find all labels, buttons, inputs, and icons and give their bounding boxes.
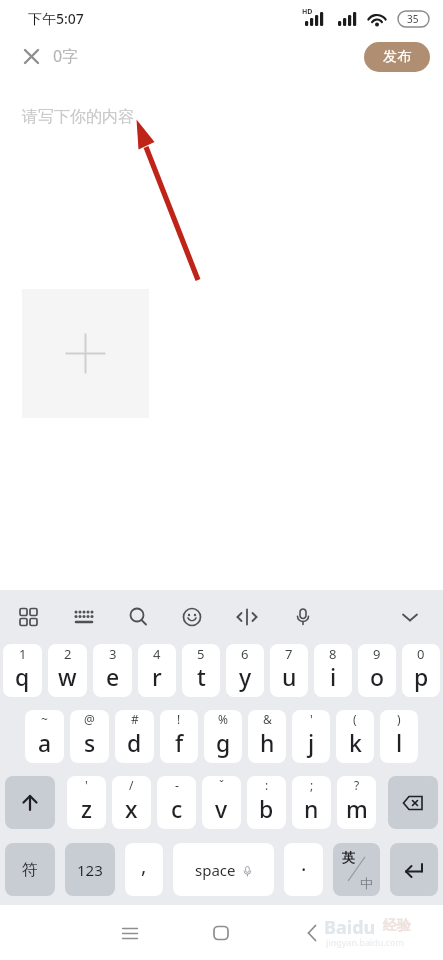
button[interactable]: @: [70, 710, 109, 763]
staticText: 8: [329, 645, 337, 663]
button[interactable]: [398, 605, 422, 629]
button[interactable]: [126, 605, 150, 629]
staticText: q: [15, 661, 30, 692]
staticText: 2: [64, 645, 72, 663]
button[interactable]: 2: [48, 644, 87, 697]
staticText: 中: [360, 875, 373, 891]
button[interactable]: 0: [402, 644, 440, 697]
staticText: c: [171, 793, 183, 824]
staticText: 下午5:07: [28, 9, 84, 28]
staticText: 6: [241, 645, 249, 663]
staticText: 4: [153, 645, 161, 663]
button[interactable]: #: [115, 710, 154, 763]
button[interactable]: 8: [314, 644, 352, 697]
staticText: v: [215, 793, 228, 824]
button[interactable]: [388, 776, 438, 829]
staticText: ,: [141, 852, 147, 879]
button[interactable]: ): [380, 710, 418, 763]
button[interactable]: (: [336, 710, 374, 763]
staticText: ': [310, 711, 313, 727]
staticText: 5: [197, 645, 205, 663]
button[interactable]: ?: [337, 776, 376, 829]
staticText: ;: [310, 777, 314, 793]
staticText: 7: [285, 645, 293, 663]
button[interactable]: ~: [25, 710, 64, 763]
staticText: h: [260, 727, 275, 758]
staticText: t: [197, 661, 206, 692]
staticText: 3: [109, 645, 117, 663]
staticText: ~: [41, 711, 48, 727]
staticText: &: [263, 711, 272, 727]
button[interactable]: [5, 776, 55, 829]
button[interactable]: [209, 921, 233, 945]
staticText: ?: [354, 777, 360, 793]
button[interactable]: ˇ: [202, 776, 241, 829]
button[interactable]: 符: [5, 843, 55, 896]
staticText: y: [239, 661, 252, 692]
staticText: u: [282, 661, 297, 692]
staticText: ': [85, 777, 88, 793]
staticText: p: [414, 661, 429, 692]
button[interactable]: ·: [284, 843, 323, 896]
staticText: :: [265, 777, 269, 793]
staticText: ·: [301, 856, 307, 883]
button[interactable]: !: [160, 710, 198, 763]
staticText: Baidu: [324, 915, 376, 940]
button[interactable]: [301, 921, 325, 945]
staticText: x: [125, 793, 138, 824]
staticText: r: [152, 661, 162, 692]
staticText: 35: [407, 12, 419, 26]
staticText: k: [349, 727, 362, 758]
staticText: #: [131, 711, 139, 727]
staticText: 1: [19, 645, 27, 663]
staticText: a: [38, 727, 52, 758]
staticText: !: [177, 711, 181, 727]
button[interactable]: 6: [226, 644, 264, 697]
staticText: g: [216, 727, 231, 758]
button[interactable]: /: [112, 776, 151, 829]
staticText: z: [81, 793, 92, 824]
button[interactable]: 9: [358, 644, 396, 697]
staticText: 英: [342, 849, 355, 865]
button[interactable]: [22, 289, 149, 418]
button[interactable]: [180, 605, 204, 629]
button[interactable]: [17, 605, 41, 629]
button[interactable]: 1: [3, 644, 42, 697]
staticText: d: [127, 727, 142, 758]
staticText: s: [84, 727, 96, 758]
staticText: 发布: [383, 48, 411, 66]
button[interactable]: 发布: [364, 42, 430, 72]
staticText: 符: [22, 860, 38, 880]
button[interactable]: 英: [333, 843, 380, 896]
staticText: 9: [373, 645, 381, 663]
button[interactable]: [118, 921, 142, 945]
button[interactable]: 4: [138, 644, 176, 697]
button[interactable]: [72, 605, 96, 629]
button[interactable]: 5: [182, 644, 220, 697]
button[interactable]: ,: [125, 843, 163, 896]
staticText: HD: [302, 7, 313, 17]
staticText: %: [218, 711, 228, 727]
button[interactable]: 7: [270, 644, 308, 697]
button[interactable]: -: [157, 776, 196, 829]
button[interactable]: %: [204, 710, 242, 763]
button[interactable]: 3: [93, 644, 132, 697]
staticText: 经验: [383, 917, 411, 935]
staticText: f: [175, 727, 184, 758]
button[interactable]: [235, 605, 259, 629]
button[interactable]: space: [173, 843, 274, 896]
staticText: ˇ: [219, 777, 225, 793]
button[interactable]: [291, 605, 315, 629]
staticText: e: [106, 661, 120, 692]
button[interactable]: ;: [292, 776, 331, 829]
button[interactable]: [18, 43, 44, 69]
button[interactable]: &: [248, 710, 286, 763]
button[interactable]: [390, 843, 438, 896]
button[interactable]: ': [67, 776, 106, 829]
button[interactable]: ': [292, 710, 330, 763]
staticText: (: [353, 711, 357, 727]
staticText: 0字: [53, 45, 79, 67]
staticText: ): [397, 711, 401, 727]
button[interactable]: 123: [65, 843, 115, 896]
button[interactable]: :: [247, 776, 286, 829]
